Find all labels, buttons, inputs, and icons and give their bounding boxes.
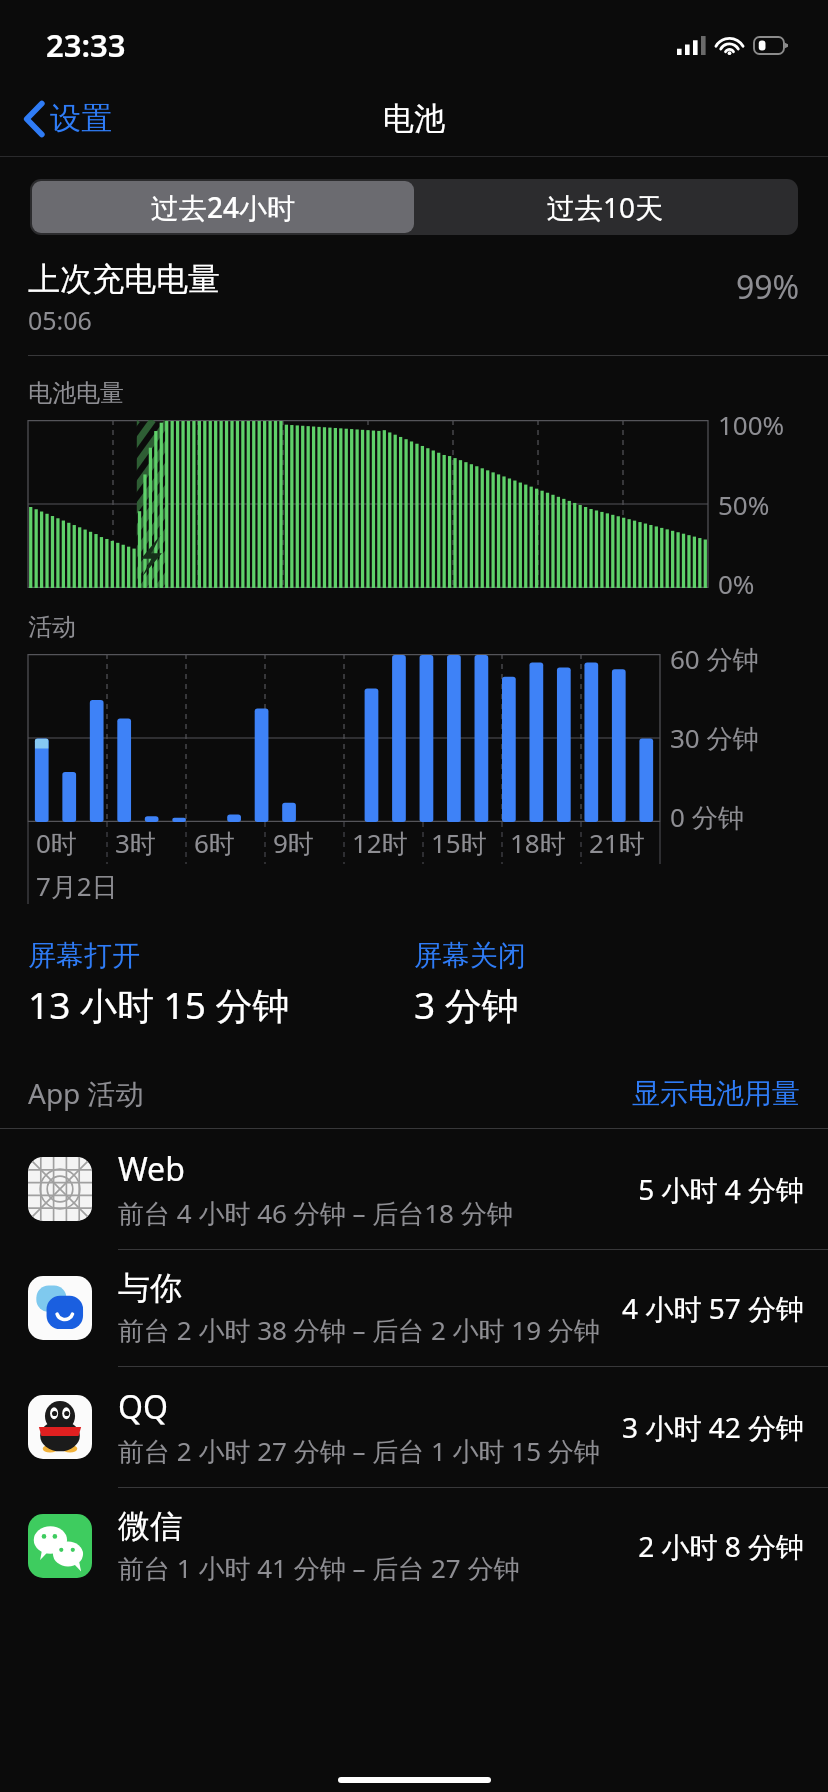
staticText: 18时 (510, 825, 566, 861)
staticText: 前台 2 小时 27 分钟 – 后台 1 小时 15 分钟 (118, 1433, 600, 1469)
staticText: 0 分钟 (670, 799, 744, 835)
staticText: 过去24小时 (151, 188, 296, 226)
staticText: 与你 (118, 1268, 182, 1308)
staticText: 2 小时 8 分钟 (618, 1527, 804, 1565)
staticText: 过去10天 (547, 188, 664, 226)
button[interactable]: Web (0, 1129, 828, 1249)
staticText: 3 分钟 (414, 979, 519, 1030)
button[interactable]: 过去24小时 (32, 181, 414, 233)
staticText: 13 小时 15 分钟 (28, 979, 290, 1030)
staticText: 电池电量 (28, 378, 124, 408)
staticText: 3时 (115, 825, 156, 861)
staticText: 0时 (36, 825, 77, 861)
staticText: 上次充电电量 (28, 259, 220, 299)
staticText: Web (118, 1147, 185, 1191)
staticText: QQ (118, 1385, 168, 1429)
staticText: 23:33 (46, 24, 126, 66)
staticText: 屏幕关闭 (414, 938, 526, 973)
button[interactable]: 过去10天 (414, 181, 796, 233)
staticText: 3 小时 42 分钟 (618, 1408, 804, 1446)
staticText: App 活动 (28, 1074, 632, 1112)
staticText: 99% (736, 265, 800, 309)
staticText: 21时 (589, 825, 645, 861)
staticText: 显示电池用量 (632, 1076, 800, 1111)
staticText: 05:06 (28, 303, 92, 337)
other: 与你 (28, 1276, 92, 1340)
button[interactable]: 微信 (0, 1488, 828, 1604)
staticText: 60 分钟 (670, 641, 759, 677)
staticText: 电池 (383, 99, 445, 138)
staticText: 设置 (50, 99, 112, 138)
staticText: 4 小时 57 分钟 (618, 1289, 804, 1327)
other: Web (28, 1157, 92, 1221)
button[interactable]: 与你 (0, 1250, 828, 1366)
other: 微信 (28, 1514, 92, 1578)
button[interactable]: QQ (0, 1367, 828, 1487)
button[interactable]: 显示电池用量 (632, 1076, 800, 1111)
staticText: 活动 (28, 612, 76, 642)
staticText: 前台 4 小时 46 分钟 – 后台18 分钟 (118, 1195, 513, 1231)
staticText: 50% (718, 487, 770, 522)
staticText: 前台 1 小时 41 分钟 – 后台 27 分钟 (118, 1550, 520, 1586)
staticText: 15时 (431, 825, 487, 861)
staticText: 前台 2 小时 38 分钟 – 后台 2 小时 19 分钟 (118, 1312, 600, 1348)
staticText: 7月2日 (36, 868, 118, 904)
staticText: 9时 (273, 825, 314, 861)
staticText: 12时 (352, 825, 408, 861)
other: QQ (28, 1395, 92, 1459)
button[interactable]: 设置 (16, 93, 120, 144)
staticText: 100% (718, 407, 785, 442)
staticText: 0% (718, 566, 755, 601)
staticText: 30 分钟 (670, 720, 759, 756)
staticText: 屏幕打开 (28, 938, 140, 973)
staticText: 微信 (118, 1506, 182, 1546)
staticText: 6时 (194, 825, 235, 861)
staticText: 5 小时 4 分钟 (618, 1170, 804, 1208)
